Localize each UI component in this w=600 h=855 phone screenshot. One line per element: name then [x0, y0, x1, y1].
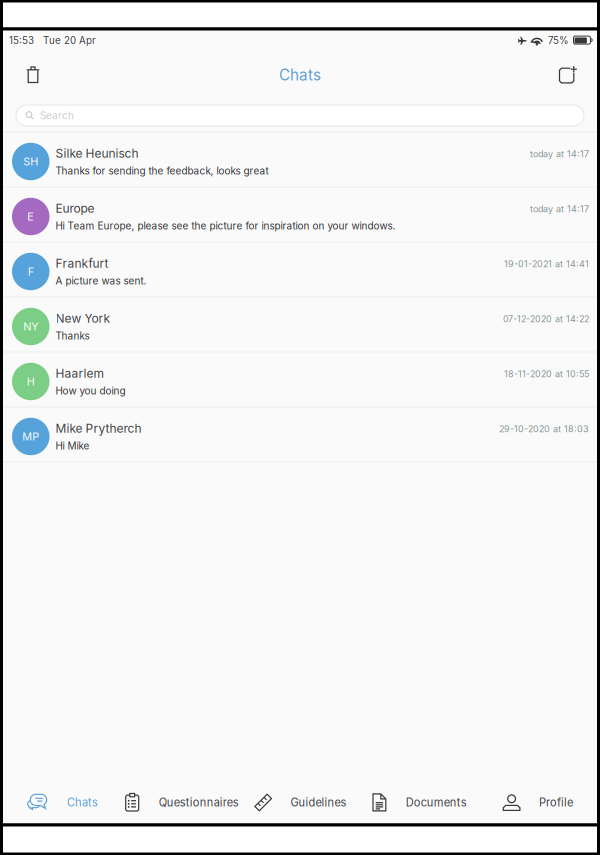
- button[interactable]: MP: [3, 407, 597, 462]
- staticText: Chats: [279, 66, 321, 84]
- staticText: E: [27, 210, 34, 223]
- staticText: 07-12-2020 at 14:22: [503, 313, 589, 324]
- staticText: Thanks: [55, 330, 89, 342]
- button[interactable]: F: [3, 242, 597, 297]
- staticText: Hi Team Europe, please see the picture f…: [55, 220, 395, 232]
- staticText: 19-01-2021 at 14:41: [504, 258, 589, 269]
- staticText: Guidelines: [290, 796, 346, 809]
- staticText: How you doing: [55, 385, 125, 397]
- button[interactable]: Chats: [3, 781, 122, 823]
- button[interactable]: SH: [3, 132, 597, 187]
- staticText: 29-10-2020 at 18:03: [499, 423, 589, 434]
- staticText: 75%: [548, 35, 569, 46]
- staticText: Mike Prytherch: [55, 421, 141, 436]
- staticText: A picture was sent.: [55, 275, 146, 287]
- staticText: Documents: [406, 796, 467, 809]
- button[interactable]: New chat: [548, 50, 588, 99]
- staticText: today at 14:17: [530, 203, 589, 214]
- staticText: 18-11-2020 at 10:55: [504, 368, 589, 379]
- staticText: NY: [23, 320, 38, 333]
- button[interactable]: Documents: [359, 781, 478, 823]
- staticText: Frankfurt: [55, 256, 108, 271]
- staticText: Questionnaires: [159, 796, 239, 809]
- staticText: Hi Mike: [55, 440, 89, 452]
- button[interactable]: H: [3, 352, 597, 407]
- button[interactable]: Profile: [478, 781, 597, 823]
- staticText: Chats: [67, 796, 98, 809]
- button[interactable]: Guidelines: [241, 781, 359, 823]
- staticText: F: [28, 265, 34, 278]
- staticText: SH: [23, 155, 38, 168]
- button[interactable]: Delete: [13, 50, 53, 99]
- staticText: Europe: [55, 201, 94, 216]
- staticText: 15:53: [9, 35, 34, 46]
- staticText: Thanks for sending the feedback, looks g…: [55, 165, 268, 177]
- button[interactable]: E: [3, 187, 597, 242]
- staticText: Silke Heunisch: [55, 146, 138, 161]
- staticText: Tue 20 Apr: [43, 35, 96, 46]
- staticText: New York: [55, 311, 110, 326]
- staticText: MP: [22, 430, 39, 443]
- staticText: H: [27, 375, 35, 388]
- staticText: Profile: [539, 796, 573, 809]
- staticText: Search: [40, 109, 74, 122]
- button[interactable]: Search: [16, 105, 584, 126]
- staticText: today at 14:17: [530, 148, 589, 159]
- button[interactable]: Questionnaires: [122, 781, 241, 823]
- button[interactable]: NY: [3, 297, 597, 352]
- staticText: Haarlem: [55, 366, 104, 381]
